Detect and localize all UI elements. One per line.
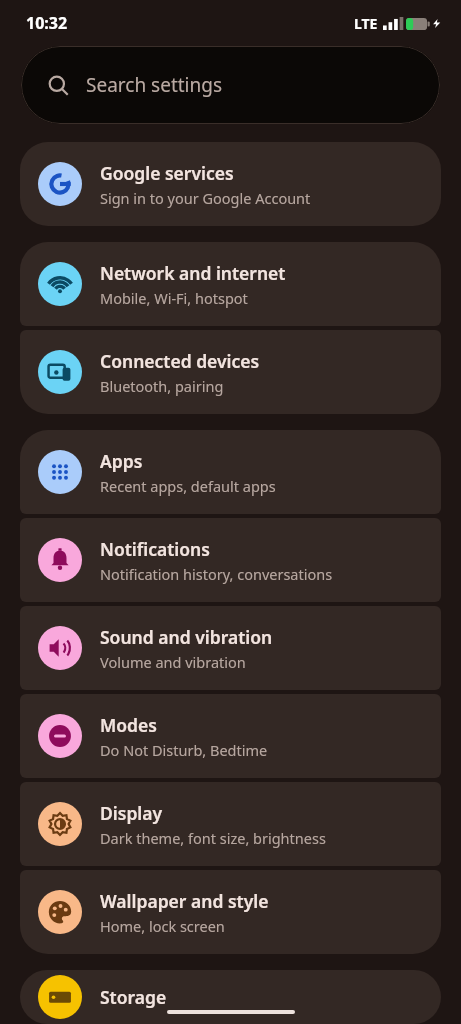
button[interactable]: Search settings xyxy=(21,46,440,124)
button[interactable]: Connected devices xyxy=(20,330,441,414)
staticText: Volume and vibration xyxy=(100,652,246,672)
staticText: Do Not Disturb, Bedtime xyxy=(100,740,268,760)
staticText: Notification history, conversations xyxy=(100,564,333,584)
button[interactable]: Display xyxy=(20,782,441,866)
button[interactable]: Notifications xyxy=(20,518,441,602)
staticText: Sound and vibration xyxy=(100,625,273,649)
button[interactable]: Modes xyxy=(20,694,441,778)
staticText: Connected devices xyxy=(100,349,260,373)
staticText: Recent apps, default apps xyxy=(100,476,276,496)
staticText: Network and internet xyxy=(100,261,286,285)
staticText: Home, lock screen xyxy=(100,916,225,936)
staticText: Wallpaper and style xyxy=(100,889,269,913)
staticText: 10:32 xyxy=(26,12,68,34)
staticText: Dark theme, font size, brightness xyxy=(100,828,326,848)
staticText: Sign in to your Google Account xyxy=(100,188,311,208)
staticText: Display xyxy=(100,801,163,825)
staticText: Notifications xyxy=(100,537,210,561)
button[interactable]: Network and internet xyxy=(20,242,441,326)
button[interactable]: Apps xyxy=(20,430,441,514)
staticText: Google services xyxy=(100,161,234,185)
staticText: Mobile, Wi-Fi, hotspot xyxy=(100,288,248,308)
button[interactable]: Sound and vibration xyxy=(20,606,441,690)
button[interactable]: Storage xyxy=(20,970,441,1024)
staticText: Bluetooth, pairing xyxy=(100,376,224,396)
staticText: Apps xyxy=(100,449,143,473)
staticText: Storage xyxy=(100,985,167,1009)
button[interactable]: Wallpaper and style xyxy=(20,870,441,954)
staticText: LTE xyxy=(354,14,378,33)
staticText: Search settings xyxy=(86,72,223,98)
button[interactable]: Google services xyxy=(20,142,441,226)
staticText: Modes xyxy=(100,713,157,737)
